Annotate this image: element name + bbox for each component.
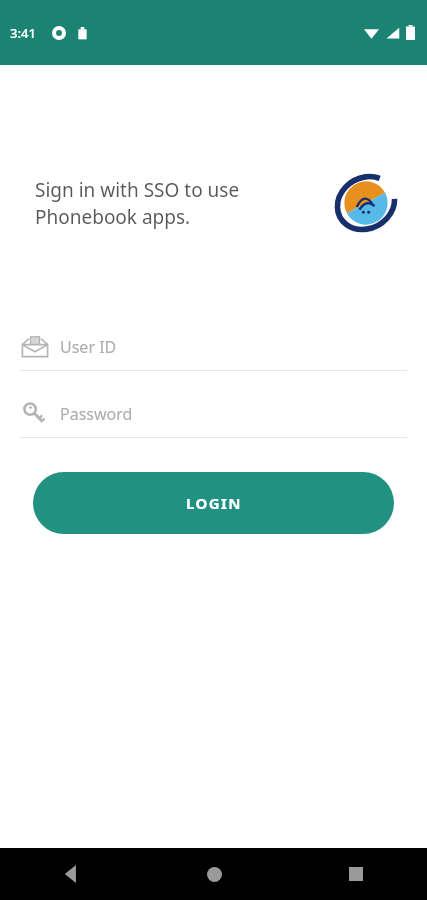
button[interactable]: Recents: [285, 848, 427, 900]
staticText: LOGIN: [186, 493, 242, 513]
staticText: Password: [60, 403, 133, 425]
staticText: 3:41: [10, 24, 36, 42]
staticText: User ID: [60, 336, 117, 358]
staticText: Sign in with SSO to use Phonebook apps.: [35, 177, 333, 230]
button[interactable]: Back: [0, 848, 143, 900]
button[interactable]: LOGIN: [33, 472, 394, 534]
button[interactable]: Home: [143, 848, 285, 900]
